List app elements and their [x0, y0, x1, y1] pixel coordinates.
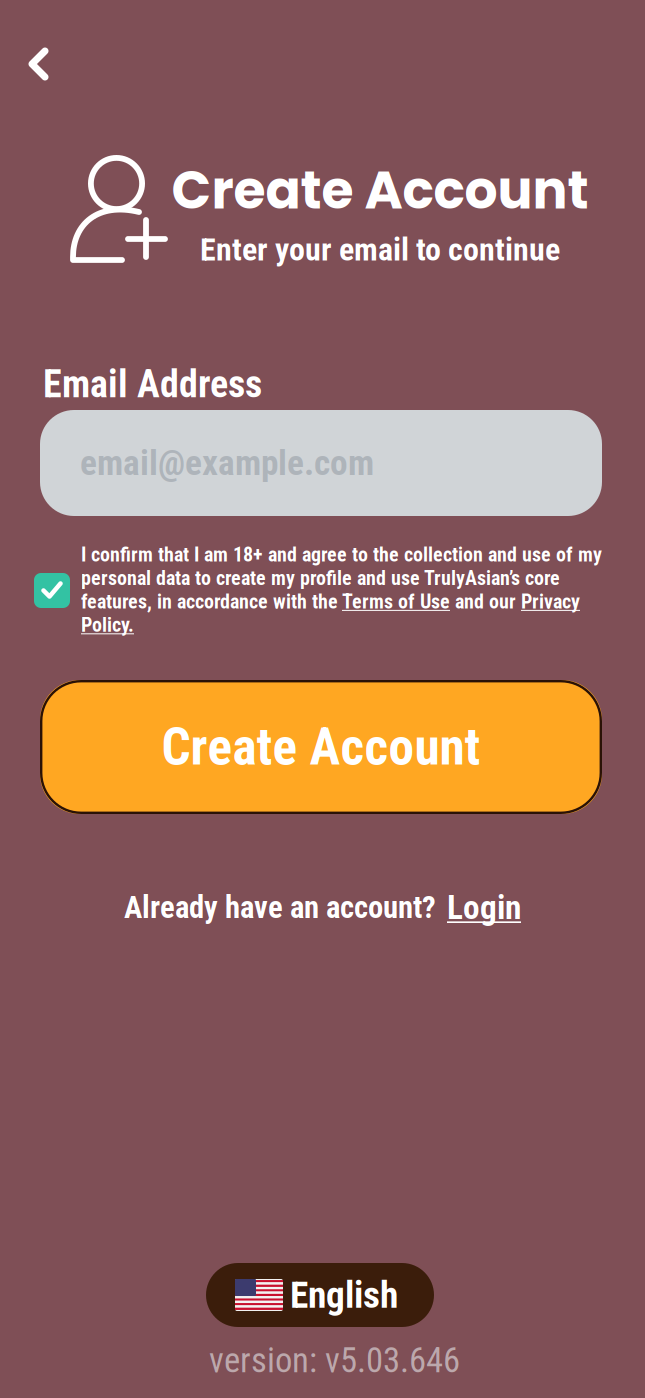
staticText: Login: [447, 888, 521, 927]
staticText: Already have an account?: [124, 890, 436, 925]
staticText: Enter your email to continue: [200, 231, 560, 268]
staticText: email@example.com: [80, 442, 374, 484]
button[interactable]: English: [206, 1263, 434, 1327]
button[interactable]: Create Account: [40, 680, 602, 814]
button[interactable]: Back: [14, 34, 64, 94]
staticText: I confirm that I am 18+ and agree to the…: [81, 543, 602, 637]
staticText: English: [290, 1273, 398, 1317]
staticText: Create Account: [171, 154, 588, 227]
button[interactable]: Accept terms: [34, 573, 70, 608]
button[interactable]: Login: [436, 888, 521, 927]
staticText: version: v5.03.646: [209, 1340, 460, 1381]
staticText: Email Address: [43, 362, 262, 406]
staticText: Create Account: [161, 717, 480, 777]
